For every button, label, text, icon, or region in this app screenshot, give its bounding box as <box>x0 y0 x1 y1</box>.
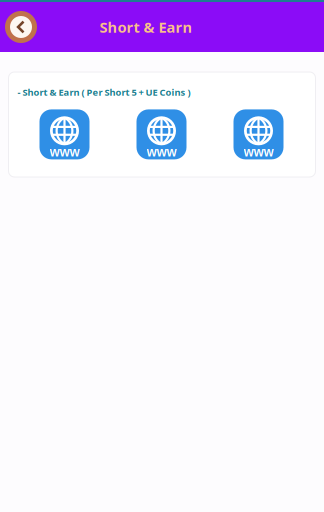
staticText: WWW <box>146 145 176 159</box>
button[interactable]: Open short link 2 <box>136 109 186 159</box>
button[interactable]: Open short link 1 <box>39 109 89 159</box>
button[interactable]: Back <box>2 5 40 49</box>
staticText: WWW <box>49 145 79 159</box>
staticText: Short & Earn <box>99 17 192 37</box>
staticText: - Short & Earn ( Per Short 5 + UE Coins … <box>17 86 190 98</box>
staticText: WWW <box>243 145 273 159</box>
button[interactable]: Open short link 3 <box>233 109 283 159</box>
